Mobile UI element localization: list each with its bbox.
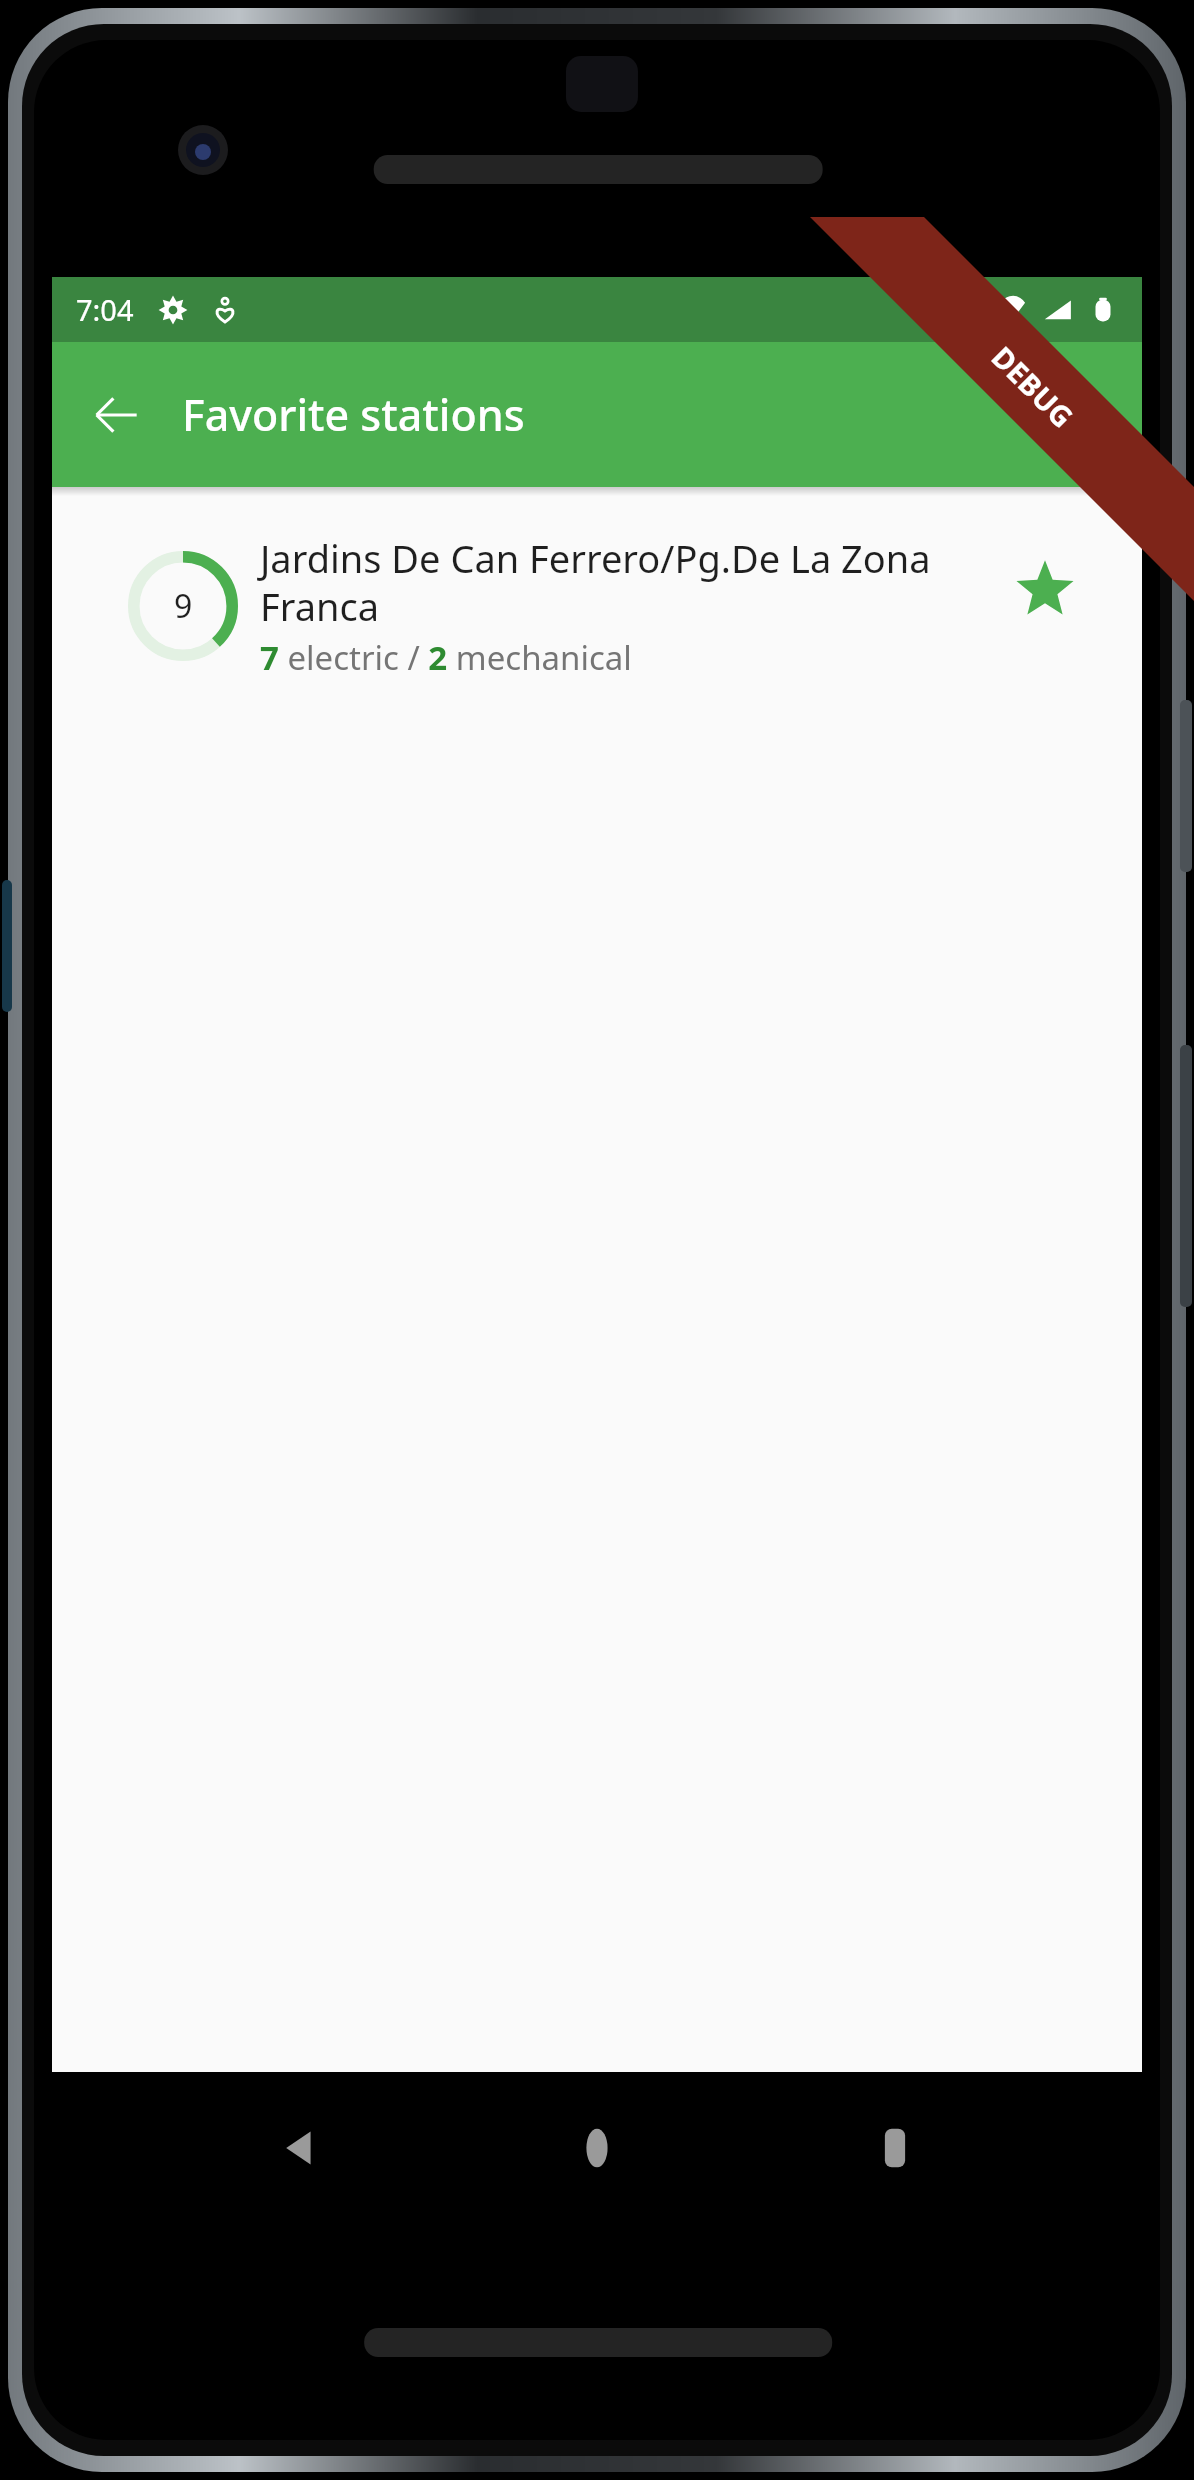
staticText: 9	[174, 584, 193, 628]
button[interactable]: Favorite	[1000, 544, 1090, 634]
button[interactable]: Recent apps	[845, 2098, 945, 2198]
staticText: Jardins De Can Ferrero/Pg.De La Zona Fra…	[260, 532, 994, 633]
staticText: 7 electric / 2 mechanical	[260, 635, 632, 680]
button[interactable]: 9	[52, 496, 1142, 696]
button[interactable]: Home	[547, 2098, 647, 2198]
staticText: 7:04	[76, 290, 134, 329]
staticText: DEBUG	[984, 337, 1082, 436]
button[interactable]: Back	[250, 2098, 350, 2198]
staticText: Favorite stations	[182, 385, 525, 444]
button[interactable]: Back	[78, 377, 154, 453]
